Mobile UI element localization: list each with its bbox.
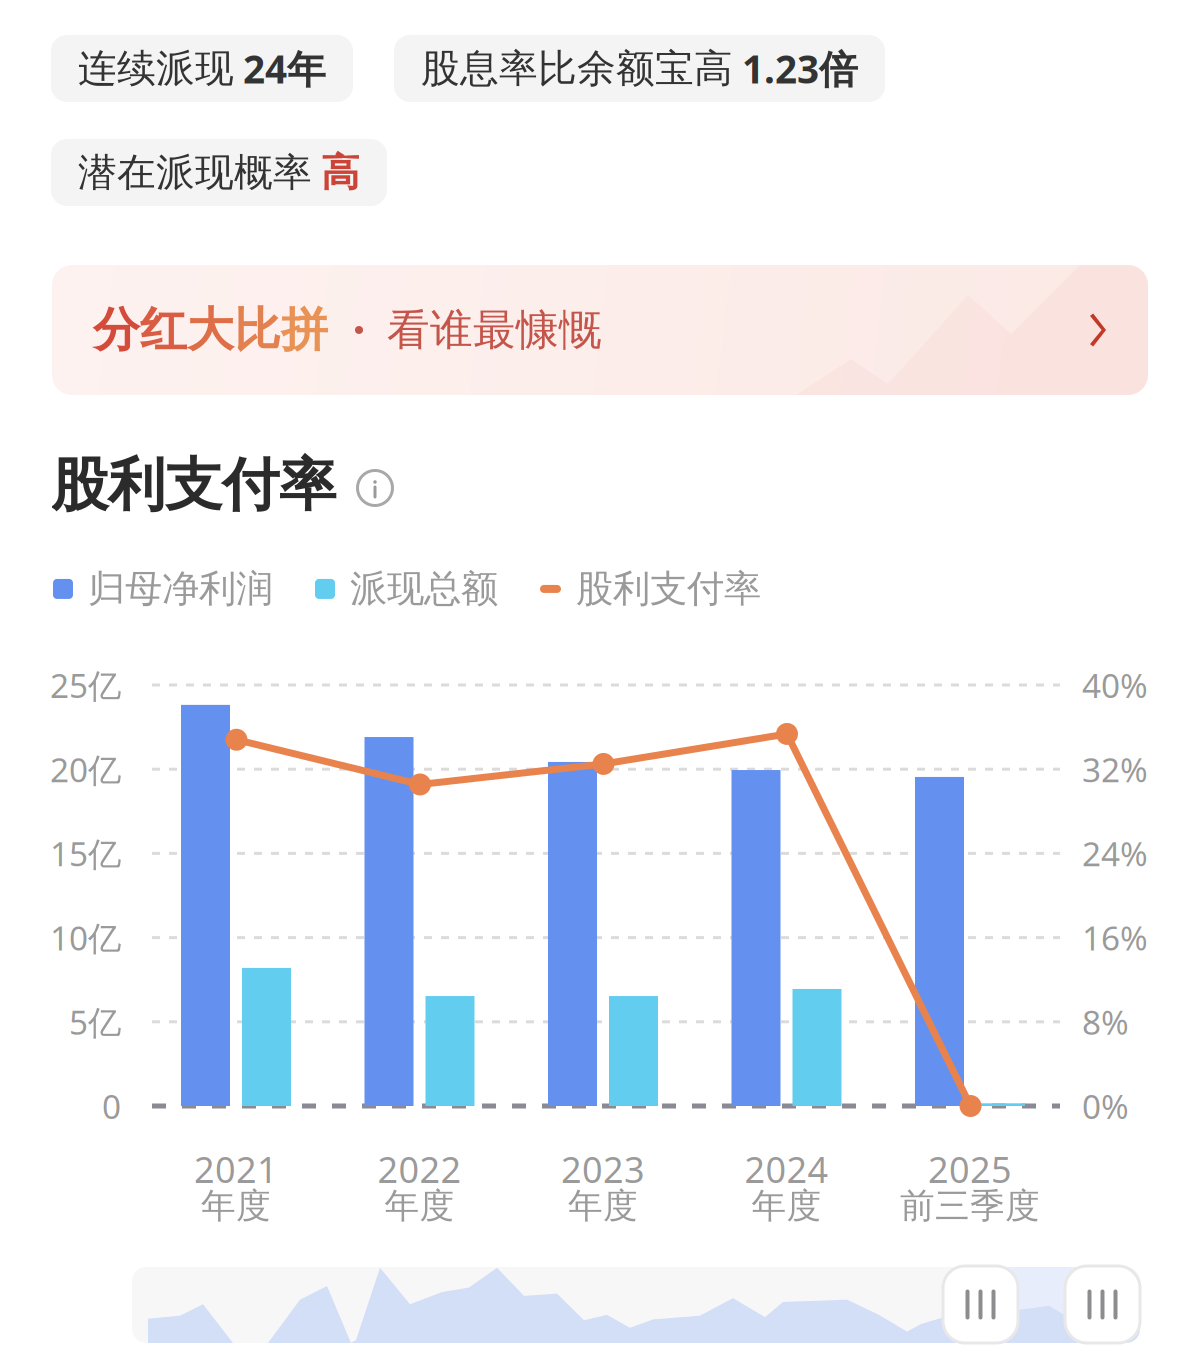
button[interactable]: 股息率比余额宝高 [394, 35, 885, 102]
staticText: 年度 [751, 1185, 821, 1227]
staticText: 高 [321, 149, 360, 196]
staticText: 拼 [281, 301, 328, 359]
staticText: 股利支付率 [576, 566, 761, 612]
button[interactable]: 分 [52, 265, 1148, 395]
staticText: 归母净利润 [88, 566, 273, 612]
staticText: 0% [1082, 1084, 1129, 1128]
staticText: 5亿 [69, 1000, 121, 1044]
staticText: 2025 [928, 1145, 1012, 1193]
staticText: 连续派现 [78, 45, 234, 92]
staticText: 20亿 [50, 747, 121, 791]
staticText: 2024 [744, 1145, 828, 1193]
staticText: 2022 [377, 1145, 461, 1193]
staticText: 派现总额 [350, 566, 498, 612]
staticText: 40% [1082, 663, 1148, 707]
staticText: 24% [1082, 831, 1148, 876]
staticText: 2023 [561, 1145, 645, 1193]
staticText: 股利支付率 [51, 450, 336, 520]
staticText: 前三季度 [900, 1185, 1040, 1227]
staticText: 2021 [194, 1145, 278, 1193]
staticText: 25亿 [50, 663, 121, 707]
staticText: 股息率比余额宝高 [421, 45, 733, 92]
staticText: 15亿 [50, 831, 121, 876]
staticText: 年度 [568, 1185, 638, 1227]
button[interactable]: 潜在派现概率 [51, 139, 387, 206]
staticText: 红 [140, 301, 187, 359]
staticText: 年度 [201, 1185, 271, 1227]
button[interactable]: 结束范围 [1065, 1266, 1140, 1343]
staticText: 10亿 [50, 915, 121, 960]
button[interactable]: 起始范围 [943, 1266, 1018, 1343]
staticText: 看谁最慷慨 [387, 304, 602, 356]
button[interactable]: 连续派现 [51, 35, 353, 102]
staticText: 0 [102, 1084, 121, 1128]
staticText: 8% [1082, 1000, 1129, 1044]
staticText: 32% [1082, 747, 1148, 791]
staticText: 年度 [384, 1185, 454, 1227]
staticText: 比 [234, 301, 281, 359]
button[interactable]: 说明 [353, 466, 397, 510]
staticText: 分 [93, 301, 140, 359]
staticText: 1.23倍 [742, 43, 858, 94]
staticText: 24年 [243, 43, 326, 94]
staticText: 16% [1082, 915, 1148, 960]
staticText: 大 [187, 301, 234, 359]
staticText: 潜在派现概率 [78, 149, 312, 196]
